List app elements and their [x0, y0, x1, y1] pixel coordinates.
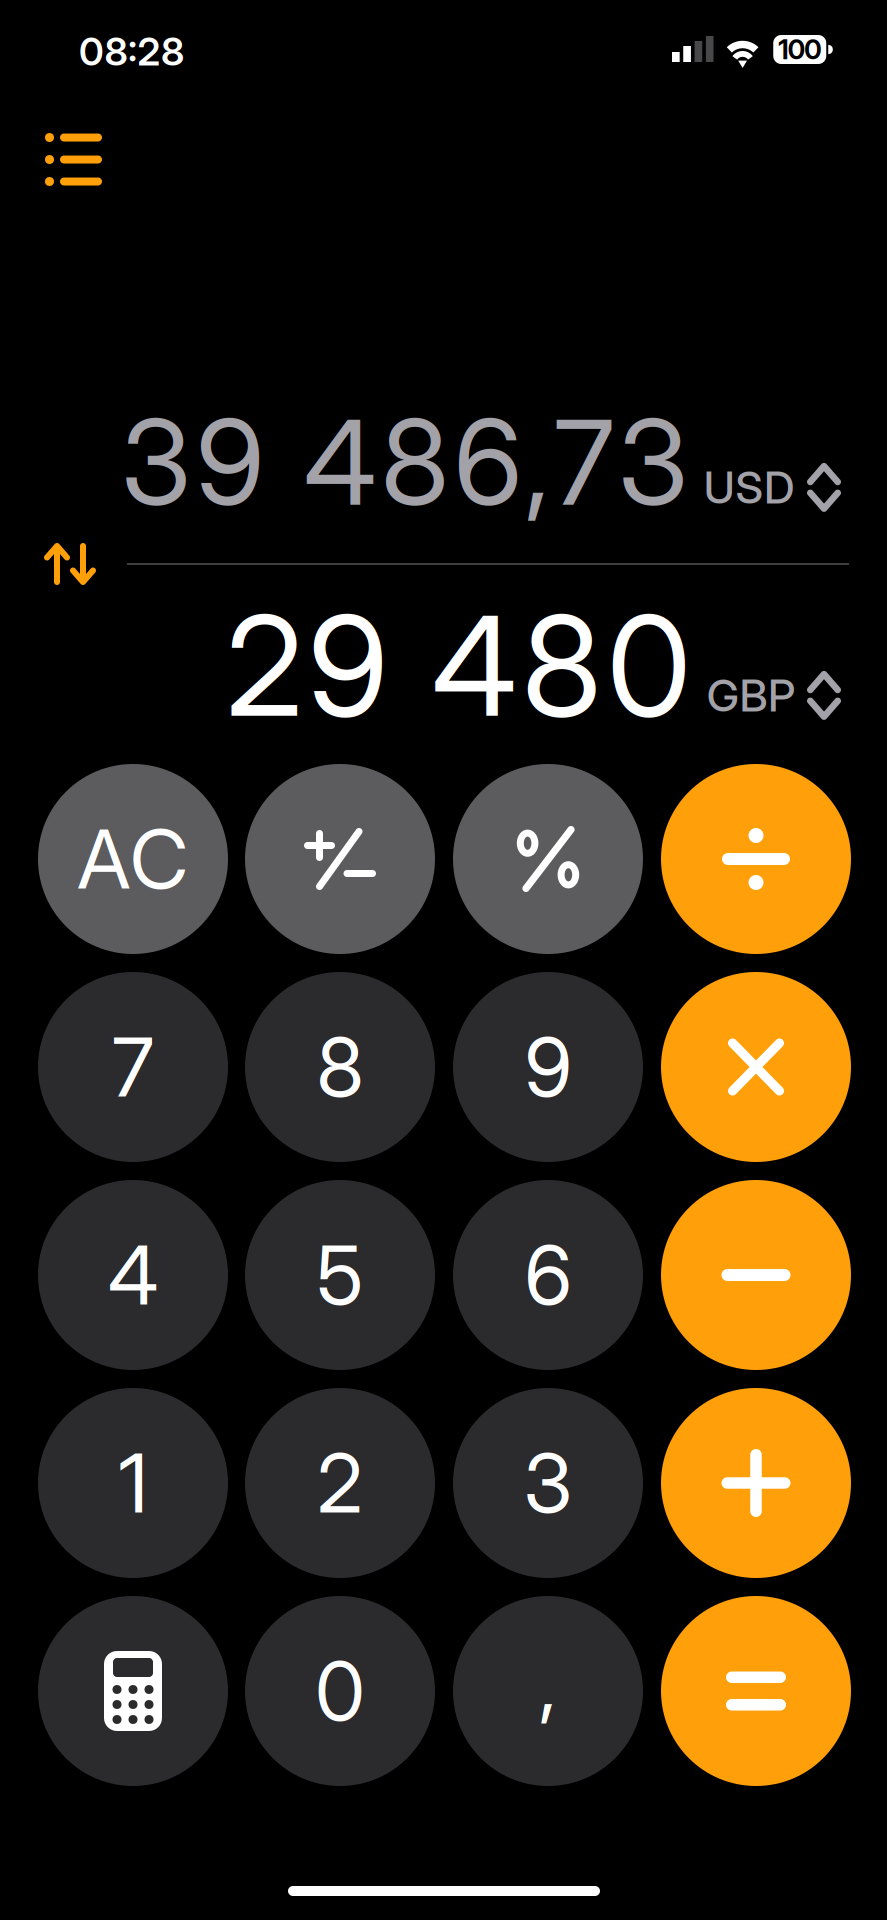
- button[interactable]: Divide: [661, 764, 851, 954]
- staticText: GBP: [707, 669, 795, 722]
- staticText: 100: [778, 33, 821, 66]
- staticText: ,: [539, 1634, 557, 1732]
- button[interactable]: 3: [453, 1388, 643, 1578]
- staticText: 29 480: [226, 583, 691, 749]
- staticText: 9: [524, 1018, 571, 1116]
- staticText: 5: [316, 1226, 363, 1324]
- staticText: 2: [317, 1434, 363, 1532]
- button[interactable]: 5: [245, 1180, 435, 1370]
- staticText: 4: [108, 1226, 158, 1324]
- button[interactable]: Plus: [661, 1388, 851, 1578]
- staticText: 0: [315, 1642, 365, 1740]
- button[interactable]: USD: [688, 485, 887, 550]
- button[interactable]: 4: [38, 1180, 228, 1370]
- button[interactable]: Multiply: [661, 972, 851, 1162]
- staticText: 6: [524, 1226, 571, 1324]
- button[interactable]: 1: [38, 1388, 228, 1578]
- staticText: 7: [112, 1018, 154, 1116]
- button[interactable]: 2: [245, 1388, 435, 1578]
- button[interactable]: ,: [453, 1596, 643, 1786]
- button[interactable]: Minus: [661, 1180, 851, 1370]
- staticText: USD: [704, 461, 795, 514]
- staticText: 39 486,73: [121, 391, 688, 533]
- button[interactable]: 6: [453, 1180, 643, 1370]
- button[interactable]: 7: [38, 972, 228, 1162]
- button[interactable]: Calculator: [38, 1596, 228, 1786]
- staticText: 1: [118, 1434, 147, 1532]
- button[interactable]: Percent: [453, 764, 643, 954]
- button[interactable]: Equals: [661, 1596, 851, 1786]
- button[interactable]: 8: [245, 972, 435, 1162]
- staticText: 08:28: [79, 28, 184, 75]
- button[interactable]: Swap currencies: [24, 523, 116, 605]
- staticText: 8: [316, 1018, 363, 1116]
- button[interactable]: Plus minus: [245, 764, 435, 954]
- button[interactable]: History: [25, 111, 122, 208]
- staticText: 3: [523, 1434, 572, 1532]
- button[interactable]: GBP: [691, 698, 887, 763]
- staticText: AC: [77, 810, 189, 908]
- button[interactable]: 0: [245, 1596, 435, 1786]
- button[interactable]: 9: [453, 972, 643, 1162]
- button[interactable]: AC: [38, 764, 228, 954]
